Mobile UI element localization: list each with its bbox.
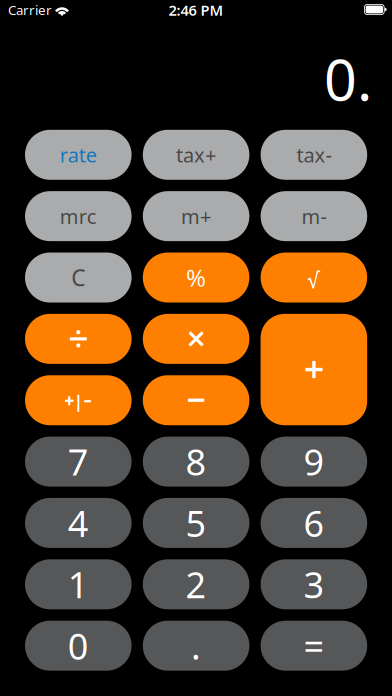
button[interactable]: Subtract — [143, 375, 249, 425]
button[interactable]: m+ — [143, 191, 249, 241]
button[interactable]: m- — [261, 191, 367, 241]
staticText: 6 — [303, 499, 324, 547]
button[interactable]: 8 — [143, 437, 249, 487]
button[interactable]: mrc — [25, 191, 132, 241]
button[interactable]: Plus minus — [25, 375, 132, 425]
button[interactable]: Divide — [25, 314, 132, 364]
button[interactable]: tax+ — [143, 130, 249, 180]
button[interactable]: = — [261, 621, 367, 671]
button[interactable]: rate — [25, 130, 132, 180]
staticText: . — [191, 622, 201, 670]
button[interactable]: 4 — [25, 498, 132, 548]
staticText: 9 — [303, 438, 324, 485]
button[interactable]: 5 — [143, 498, 249, 548]
button[interactable]: 9 — [261, 437, 367, 487]
button[interactable]: 0 — [25, 621, 132, 671]
staticText: 3 — [303, 560, 324, 608]
button[interactable]: Add — [261, 314, 367, 425]
staticText: Carrier — [8, 1, 52, 19]
staticText: m+ — [181, 203, 211, 229]
staticText: m- — [301, 203, 326, 229]
staticText: 5 — [186, 499, 207, 547]
staticText: tax+ — [176, 141, 216, 168]
button[interactable]: C — [25, 252, 132, 302]
staticText: = — [303, 622, 324, 670]
button[interactable]: Square root — [261, 252, 367, 302]
staticText: 2 — [186, 560, 207, 608]
button[interactable]: 6 — [261, 498, 367, 548]
staticText: rate — [60, 141, 97, 168]
staticText: C — [71, 262, 85, 293]
button[interactable]: 7 — [25, 437, 132, 487]
button[interactable]: 2 — [143, 559, 249, 609]
staticText: tax- — [296, 141, 331, 168]
staticText: % — [186, 262, 206, 293]
staticText: 4 — [68, 499, 89, 547]
button[interactable]: . — [143, 621, 249, 671]
staticText: 0 — [68, 622, 89, 670]
button[interactable]: tax- — [261, 130, 367, 180]
staticText: 1 — [68, 560, 89, 608]
button[interactable]: Multiply — [143, 314, 249, 364]
staticText: 8 — [186, 438, 207, 485]
staticText: mrc — [60, 203, 97, 229]
button[interactable]: 1 — [25, 559, 132, 609]
staticText: 2:46 PM — [168, 0, 223, 20]
staticText: 0. — [324, 40, 372, 116]
button[interactable]: 3 — [261, 559, 367, 609]
staticText: 7 — [68, 438, 89, 485]
button[interactable]: % — [143, 252, 249, 302]
